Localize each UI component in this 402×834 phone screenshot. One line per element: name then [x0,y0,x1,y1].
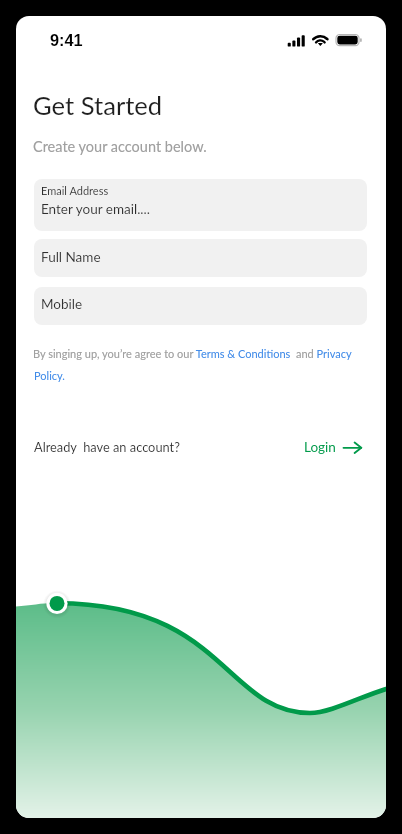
button[interactable] [34,239,367,277]
staticText: Login [304,439,336,455]
button[interactable]: Policy. [34,369,65,382]
staticText: 9:41 [50,31,83,49]
other: Battery [335,33,364,47]
other: Cellular signal [287,34,307,48]
button[interactable]: By singing up, you’re agree to our Terms… [33,347,352,360]
button[interactable] [34,179,367,231]
staticText: Mobile [41,296,83,312]
staticText: Full Name [41,249,101,265]
staticText: Already have an account? [34,439,180,454]
staticText: Create your account below. [33,138,207,155]
staticText: Get Started [33,90,163,121]
button[interactable]: Login [303,436,365,460]
staticText: Email Address [41,184,109,197]
staticText: Enter your email.... [41,201,150,217]
other: Wi-Fi [311,33,330,47]
button[interactable] [34,287,367,325]
